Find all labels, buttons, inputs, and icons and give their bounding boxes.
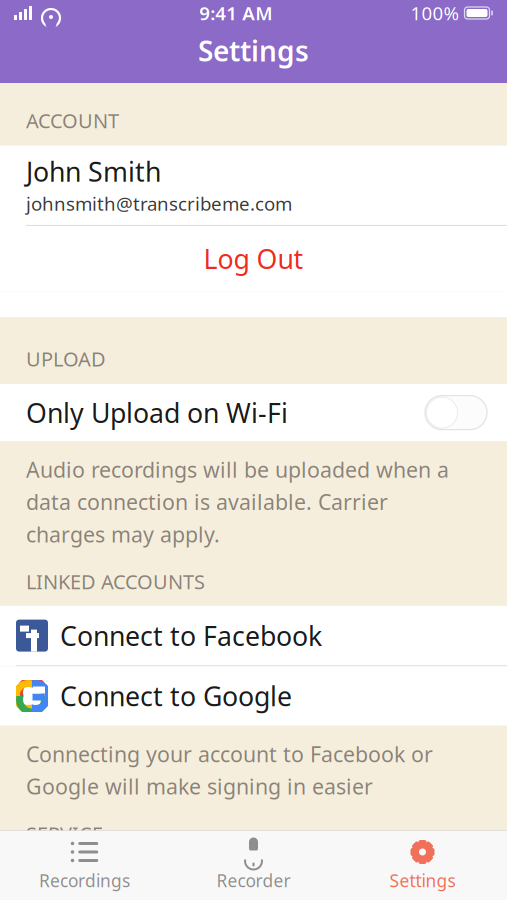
button[interactable]: Connect to Facebook xyxy=(0,606,507,665)
staticText: Settings xyxy=(389,869,455,892)
staticText: Visit Website xyxy=(173,874,333,900)
staticText: SERVICE xyxy=(26,820,103,847)
staticText: 9:41 AM xyxy=(199,1,272,25)
staticText: Log Out xyxy=(203,241,303,276)
staticText: johnsmith@transcribeme.com xyxy=(26,191,292,216)
staticText: Only Upload on Wi-Fi xyxy=(26,395,288,430)
staticText: Connect to Google xyxy=(60,678,292,714)
staticText: Connecting your account to Facebook or G… xyxy=(26,740,433,800)
staticText: 100% xyxy=(410,1,459,25)
button[interactable]: Settings xyxy=(338,831,507,900)
staticText: Settings xyxy=(198,32,309,69)
button[interactable]: Recordings xyxy=(0,831,169,900)
staticText: LINKED ACCOUNTS xyxy=(26,568,205,595)
button[interactable]: Connect to Google xyxy=(0,666,507,726)
staticText: Recordings xyxy=(39,869,130,892)
button[interactable]: Log Out xyxy=(0,226,507,291)
button[interactable]: Recorder xyxy=(169,831,338,900)
button[interactable]: Only Upload on Wi-Fi xyxy=(425,396,487,430)
button[interactable]: Visit Website xyxy=(0,858,507,900)
staticText: John Smith xyxy=(26,154,161,189)
staticText: Connect to Facebook xyxy=(60,618,322,653)
staticText: Recorder xyxy=(216,869,290,892)
staticText: UPLOAD xyxy=(26,345,106,372)
staticText: ACCOUNT xyxy=(26,107,119,134)
button[interactable]: John Smith xyxy=(0,146,507,225)
staticText: Audio recordings will be uploaded when a… xyxy=(26,455,449,548)
